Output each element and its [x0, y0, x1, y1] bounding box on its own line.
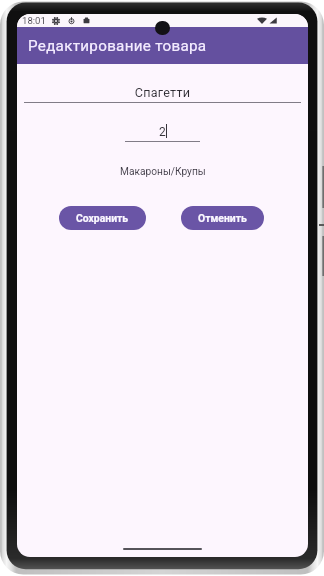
- staticText: 2: [159, 125, 166, 139]
- staticText: Отменить: [198, 212, 247, 224]
- staticText: Сохранить: [76, 212, 129, 224]
- staticText: 18:01: [22, 15, 46, 26]
- button[interactable]: Сохранить: [59, 206, 146, 230]
- staticText: Спагетти: [24, 85, 301, 100]
- button[interactable]: Отменить: [181, 206, 264, 230]
- staticText: Макароны/Крупы: [120, 166, 206, 178]
- staticText: Редактирование товара: [28, 37, 207, 55]
